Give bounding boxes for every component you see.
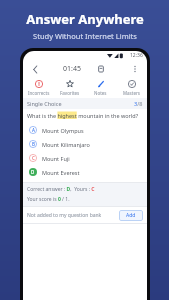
staticText: Incorrects bbox=[28, 90, 50, 96]
staticText: Single Choice bbox=[27, 100, 62, 107]
button[interactable]: Incorrects bbox=[23, 77, 54, 98]
button[interactable]: C bbox=[23, 151, 147, 165]
staticText: Masters bbox=[123, 90, 140, 96]
button[interactable]: B bbox=[23, 137, 147, 151]
button[interactable]: D bbox=[23, 165, 147, 179]
button[interactable]: Notes bbox=[85, 77, 116, 98]
staticText: What is the highest mountain in the worl… bbox=[27, 112, 139, 119]
button[interactable]: Card mode bbox=[95, 63, 107, 75]
button[interactable]: More options bbox=[128, 62, 142, 76]
staticText: Mount Fuji bbox=[42, 155, 70, 162]
staticText: Mount Kilimanjaro bbox=[42, 141, 90, 148]
button[interactable]: Back bbox=[28, 62, 42, 76]
staticText: D bbox=[31, 169, 35, 175]
staticText: B bbox=[32, 141, 35, 147]
button[interactable]: A bbox=[23, 123, 147, 137]
button[interactable]: Favorites bbox=[54, 77, 85, 98]
staticText: Mount Olympus bbox=[42, 127, 84, 134]
staticText: 01:45 bbox=[63, 64, 81, 74]
staticText: 12:36 bbox=[130, 52, 143, 59]
staticText: Study Without Internet Limits bbox=[33, 31, 137, 41]
button[interactable]: Masters bbox=[116, 77, 147, 98]
staticText: Not added to my question bank bbox=[27, 212, 102, 219]
staticText: Answer Anywhere bbox=[26, 10, 144, 28]
staticText: A bbox=[32, 127, 35, 133]
staticText: 3/8 bbox=[134, 100, 143, 107]
staticText: Add bbox=[126, 212, 136, 219]
button[interactable]: Add bbox=[119, 210, 143, 221]
staticText: Your score is 0 / 1. bbox=[27, 196, 70, 203]
staticText: Favorites bbox=[60, 90, 80, 96]
staticText: C bbox=[32, 155, 35, 161]
staticText: Correct answer : D, Yours : C bbox=[27, 186, 95, 193]
staticText: Notes bbox=[94, 90, 107, 96]
staticText: Mount Everest bbox=[42, 169, 80, 176]
